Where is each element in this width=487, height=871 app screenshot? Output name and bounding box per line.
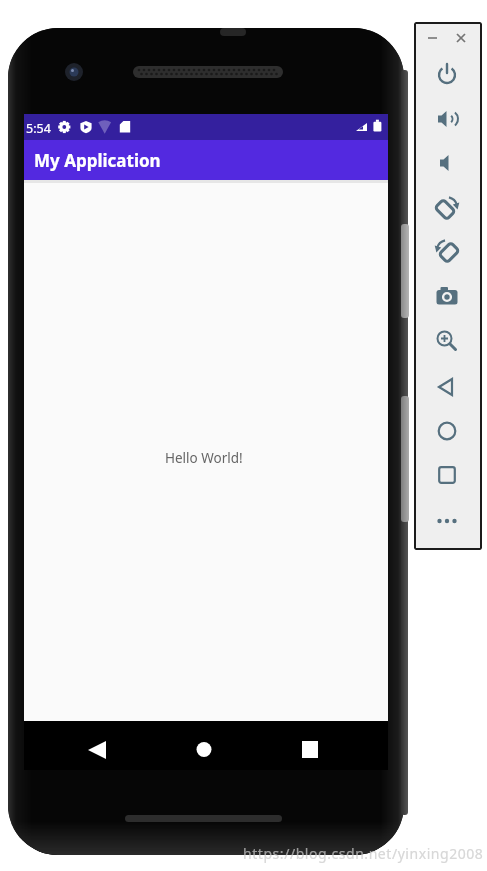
button[interactable]	[427, 54, 467, 94]
button[interactable]	[427, 367, 467, 407]
button[interactable]	[73, 726, 121, 770]
staticText: 5:54	[26, 120, 51, 137]
staticText: https://blog.csdn.net/yinxing2008	[243, 844, 484, 863]
button[interactable]	[427, 276, 467, 316]
button[interactable]	[286, 726, 334, 770]
button[interactable]	[451, 27, 472, 47]
button[interactable]	[427, 501, 467, 541]
button[interactable]	[427, 143, 467, 183]
button[interactable]	[427, 188, 467, 228]
staticText: My Application	[34, 149, 161, 172]
button[interactable]	[423, 27, 444, 47]
staticText: Hello World!	[165, 449, 243, 467]
button[interactable]	[427, 411, 467, 451]
button[interactable]	[427, 321, 467, 361]
button[interactable]	[180, 726, 228, 770]
button[interactable]	[427, 99, 467, 139]
button[interactable]	[427, 231, 467, 271]
button[interactable]	[427, 455, 467, 495]
